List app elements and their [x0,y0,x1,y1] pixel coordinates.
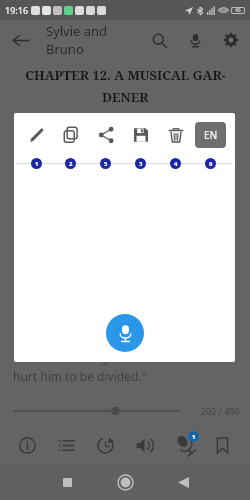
button[interactable]: Recents [45,464,89,500]
staticText: 3 [139,160,143,168]
button[interactable]: Search [140,21,178,59]
button[interactable]: Info [8,428,47,462]
button[interactable]: Contents [47,428,86,462]
staticText: EN [204,128,218,142]
button[interactable]: Save [123,122,158,148]
staticText: 2 [69,160,73,168]
staticText: hurt him to be divided." [13,368,147,384]
staticText: 1 [192,433,196,441]
staticText: 46 [235,7,241,14]
button[interactable]: Settings [212,21,250,59]
staticText: 19:16 [5,4,29,16]
button[interactable]: Voice [164,428,203,462]
staticText: course he can't go at twice. It would [13,349,216,365]
staticText: 1 [35,160,39,168]
staticText: 202 / 496 [201,405,240,417]
button[interactable]: Volume [125,428,164,462]
button[interactable]: EN [195,122,226,148]
button[interactable]: Back [0,20,40,60]
staticText: DENER [102,88,149,106]
staticText: 4 [174,160,178,168]
staticText: 5 [104,160,108,168]
button[interactable]: Bookmark [203,428,242,462]
button[interactable]: Share [88,122,123,148]
button[interactable]: Record [106,314,144,352]
staticText: Sylvie and Bruno [46,22,140,58]
button[interactable]: Edit [19,122,53,148]
button[interactable]: Seek [14,401,201,421]
staticText: 6 [209,160,213,168]
button[interactable]: Delete [158,122,193,148]
staticText: CHAPTER 12. A MUSICAL GAR- [25,66,226,84]
button[interactable]: Voice search [178,23,212,57]
button[interactable]: History [86,428,125,462]
button[interactable]: Copy [53,122,88,148]
button[interactable]: Back [161,464,205,500]
button[interactable]: Home [103,464,147,500]
